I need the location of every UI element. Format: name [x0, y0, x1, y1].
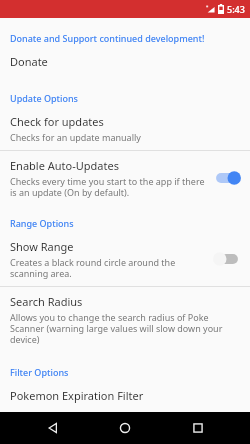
staticText: Check for updates — [10, 114, 104, 129]
button[interactable]: Home — [105, 412, 145, 444]
button[interactable]: Recent apps — [178, 412, 218, 444]
staticText: Update Options — [10, 92, 78, 104]
button[interactable]: Donate — [0, 47, 250, 76]
staticText: Enable Auto-Updates — [10, 158, 119, 173]
staticText: Search Radius — [10, 294, 83, 309]
button[interactable]: Search Radius — [0, 287, 250, 352]
staticText: Checks for an update manually — [10, 131, 141, 143]
staticText: Creates a black round circle around the … — [10, 256, 208, 279]
staticText: 5:43 — [227, 3, 245, 15]
staticText: Show Range — [10, 239, 74, 254]
button[interactable]: Toggle off — [214, 251, 240, 267]
staticText: Allows you to change the search radius o… — [10, 311, 240, 345]
staticText: Pokemon Expiration Filter — [10, 388, 144, 403]
staticText: Checks every time you start to the app i… — [10, 175, 208, 198]
button[interactable]: Enable Auto-Updates — [0, 151, 250, 205]
button[interactable]: Show Range — [0, 232, 250, 286]
button[interactable]: Check for updates — [0, 107, 250, 150]
button[interactable]: Toggle on — [214, 170, 240, 186]
staticText: Donate — [10, 54, 48, 69]
button[interactable]: Pokemon Expiration Filter — [0, 381, 250, 412]
button[interactable]: Back — [33, 412, 73, 444]
staticText: Filter Options — [10, 366, 69, 378]
staticText: Range Options — [10, 217, 74, 229]
staticText: Donate and Support continued development… — [10, 32, 205, 44]
